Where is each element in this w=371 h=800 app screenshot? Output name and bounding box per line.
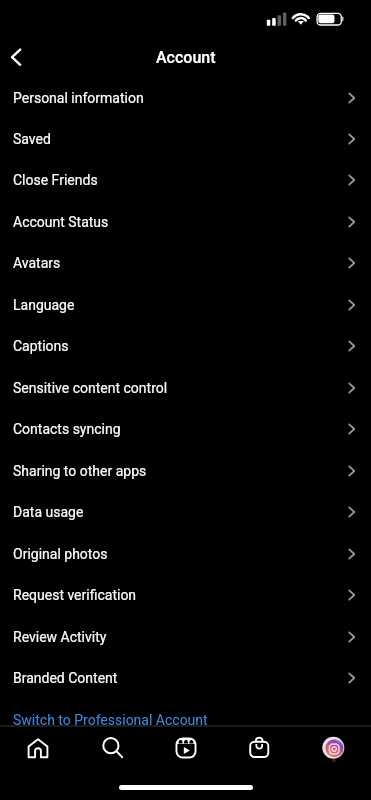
- staticText: Request verification: [13, 587, 137, 603]
- staticText: Sensitive content control: [13, 380, 168, 396]
- button[interactable]: Contacts syncing: [0, 408, 371, 449]
- staticText: Close Friends: [13, 172, 98, 188]
- button[interactable]: Switch to Professional Account: [0, 707, 371, 733]
- button[interactable]: Original photos: [0, 533, 371, 574]
- staticText: Branded Content: [13, 670, 118, 686]
- staticText: Avatars: [13, 255, 61, 271]
- button[interactable]: Request verification: [0, 574, 371, 615]
- staticText: Saved: [13, 131, 51, 147]
- button[interactable]: Search: [75, 725, 149, 770]
- button[interactable]: Close Friends: [0, 159, 371, 200]
- staticText: Captions: [13, 338, 69, 354]
- button[interactable]: Saved: [0, 118, 371, 159]
- button[interactable]: Profile: [297, 725, 371, 770]
- staticText: Sharing to other apps: [13, 463, 147, 479]
- button[interactable]: Home: [0, 725, 75, 770]
- button[interactable]: Back: [0, 37, 40, 77]
- staticText: Account: [156, 48, 216, 67]
- staticText: Contacts syncing: [13, 421, 121, 437]
- staticText: Data usage: [13, 504, 84, 520]
- staticText: Language: [13, 297, 75, 313]
- button[interactable]: Sharing to other apps: [0, 450, 371, 491]
- button[interactable]: Account Status: [0, 201, 371, 242]
- button[interactable]: Avatars: [0, 242, 371, 283]
- staticText: Review Activity: [13, 629, 107, 645]
- button[interactable]: Personal information: [0, 77, 371, 118]
- staticText: Switch to Professional Account: [13, 712, 208, 728]
- staticText: Account Status: [13, 214, 109, 230]
- button[interactable]: Sensitive content control: [0, 367, 371, 408]
- staticText: Personal information: [13, 90, 144, 106]
- button[interactable]: Shop: [223, 725, 297, 770]
- staticText: Original photos: [13, 546, 108, 562]
- button[interactable]: Reels: [149, 725, 223, 770]
- button[interactable]: Language: [0, 284, 371, 325]
- button[interactable]: Branded Content: [0, 657, 371, 698]
- button[interactable]: Review Activity: [0, 616, 371, 657]
- button[interactable]: Data usage: [0, 491, 371, 532]
- button[interactable]: Captions: [0, 325, 371, 366]
